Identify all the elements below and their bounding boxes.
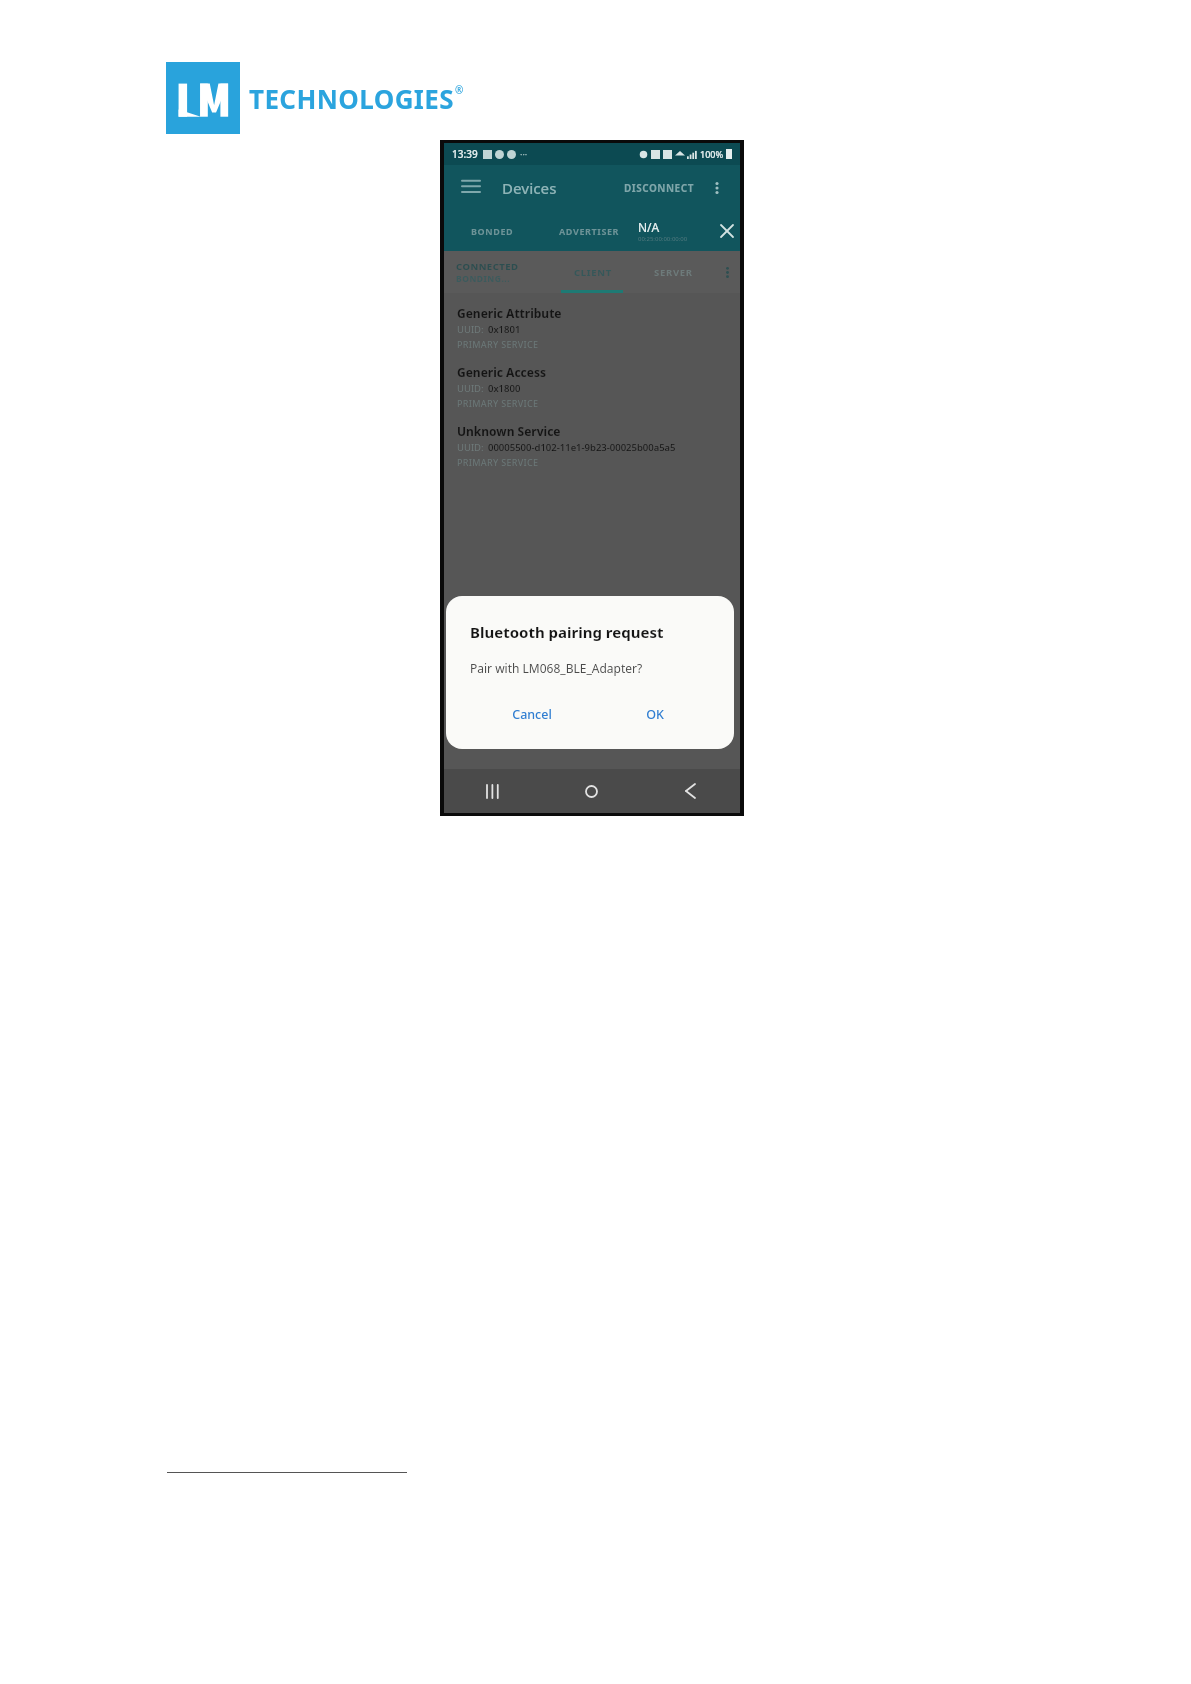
staticText: 0x1800 <box>488 382 521 395</box>
staticText: 0x1801 <box>488 323 521 336</box>
button[interactable]: More options <box>714 251 740 293</box>
button[interactable]: More options <box>706 177 728 199</box>
staticText: BONDING... <box>456 273 511 285</box>
staticText: PRIMARY SERVICE <box>457 397 539 409</box>
staticText: 100% <box>700 148 724 160</box>
button[interactable]: Recent apps <box>444 769 542 813</box>
button[interactable]: CLIENT <box>552 251 633 293</box>
staticText: Pair with LM068_BLE_Adapter? <box>470 660 643 676</box>
button[interactable]: DISCONNECT <box>620 175 698 201</box>
staticText: 13:39 <box>452 147 478 161</box>
staticText: OK <box>646 706 664 723</box>
staticText: UUID: <box>457 382 484 395</box>
button[interactable]: SERVER <box>633 251 714 293</box>
staticText: DISCONNECT <box>624 181 694 195</box>
button[interactable]: N/A <box>638 211 740 251</box>
staticText: N/A <box>638 219 660 235</box>
button[interactable]: Close device tab <box>714 218 740 244</box>
staticText: Generic Access <box>457 364 546 380</box>
button[interactable]: BONDED <box>444 211 541 251</box>
button[interactable]: Home <box>542 769 641 813</box>
button[interactable]: Open navigation menu <box>456 173 486 203</box>
staticText: Cancel <box>512 706 552 723</box>
staticText: CLIENT <box>574 266 612 279</box>
staticText: UUID: <box>457 441 484 454</box>
button[interactable]: Cancel <box>470 698 593 731</box>
button[interactable]: ADVERTISER <box>541 211 638 251</box>
staticText: ··· <box>520 148 528 160</box>
staticText: PRIMARY SERVICE <box>457 338 539 350</box>
staticText: Generic Attribute <box>457 305 562 321</box>
staticText: UUID: <box>457 323 484 336</box>
staticText: ADVERTISER <box>559 225 620 237</box>
staticText: Devices <box>502 178 557 198</box>
staticText: Unknown Service <box>457 423 561 439</box>
staticText: 00:25:00:00:00:00 <box>638 235 688 243</box>
staticText: BONDED <box>471 225 514 237</box>
staticText: SERVER <box>654 266 693 279</box>
button[interactable]: Unknown Service <box>457 421 740 470</box>
button[interactable]: Generic Attribute <box>457 303 740 352</box>
staticText: ® <box>455 83 464 97</box>
staticText: TECHNOLOGIES <box>249 81 455 116</box>
button[interactable]: Generic Access <box>457 362 740 411</box>
staticText: PRIMARY SERVICE <box>457 456 539 468</box>
staticText: CONNECTED <box>456 260 519 273</box>
button[interactable]: Back <box>641 769 740 813</box>
staticText: 00005500-d102-11e1-9b23-00025b00a5a5 <box>488 441 676 454</box>
button[interactable]: OK <box>593 698 716 731</box>
staticText: Bluetooth pairing request <box>470 622 664 642</box>
